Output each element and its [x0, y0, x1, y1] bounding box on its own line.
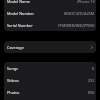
staticText: Model Number: [7, 11, 35, 16]
button[interactable]: Songs: [4, 62, 96, 74]
staticText: 856: [88, 90, 95, 95]
button[interactable]: Serial Number: [4, 19, 96, 31]
staticText: Photos: [7, 90, 20, 95]
staticText: Serial Number: [7, 23, 33, 28]
staticText: Songs: [7, 66, 18, 71]
button[interactable]: Model Name: [4, 0, 96, 7]
staticText: 252: [88, 78, 95, 83]
button[interactable]: Coverage: [4, 41, 96, 53]
staticText: Coverage: [7, 45, 24, 50]
staticText: Videos: [7, 78, 19, 83]
staticText: 0: [92, 66, 95, 71]
other: Open: [90, 45, 95, 50]
staticText: Model Name: [7, 0, 30, 4]
button[interactable]: Model Number: [4, 7, 96, 19]
staticText: FFMDW82W82YPMH: [58, 23, 95, 28]
button[interactable]: Photos: [4, 86, 96, 98]
staticText: MHDC3ZD/A2XM: [64, 11, 95, 16]
staticText: iPhone 13: [77, 0, 95, 4]
button[interactable]: Videos: [4, 74, 96, 86]
